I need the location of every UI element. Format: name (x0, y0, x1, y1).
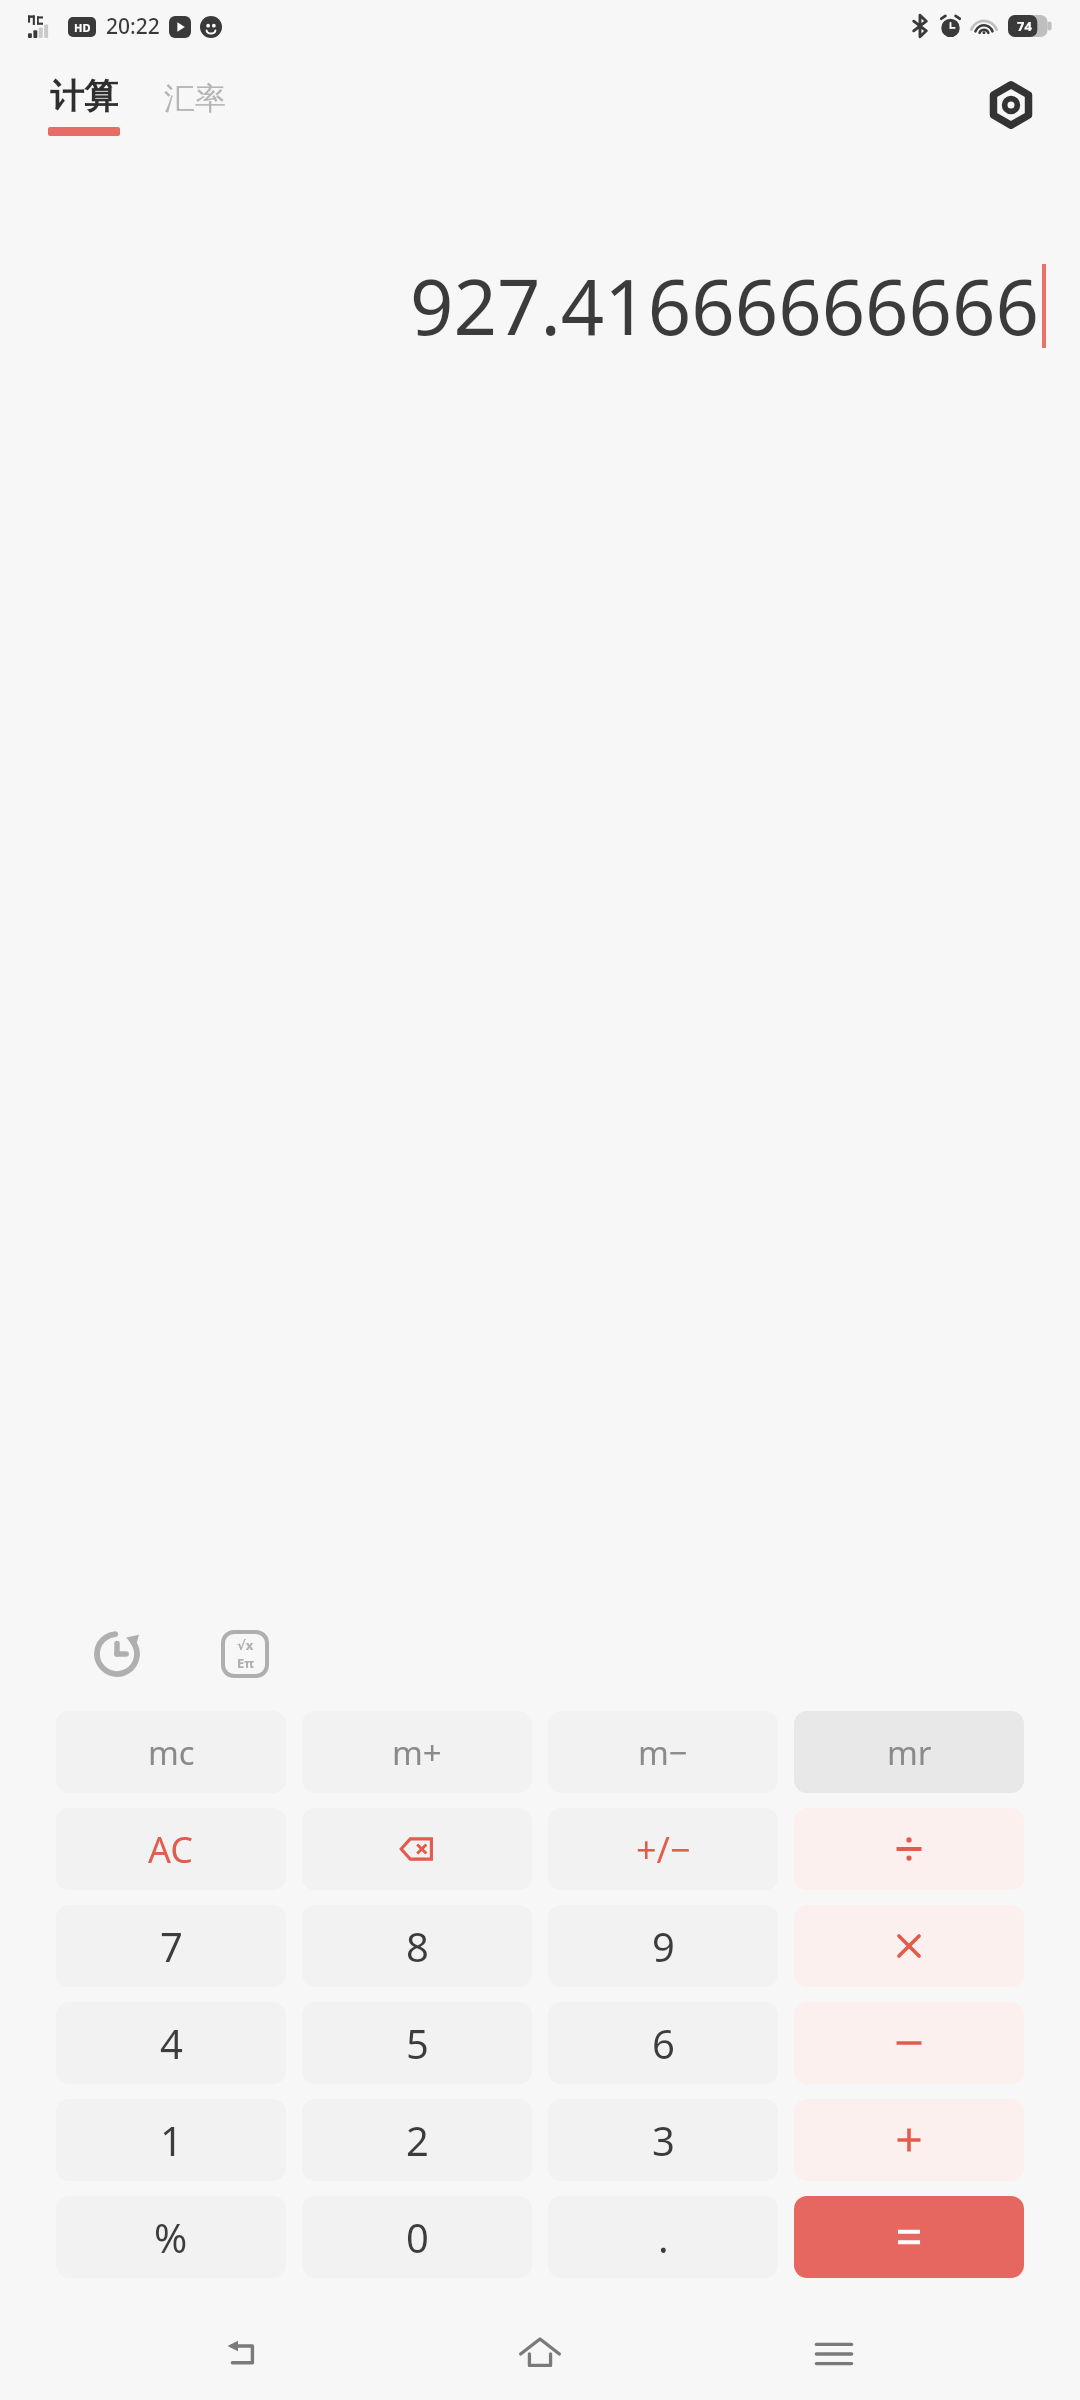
button[interactable]: Home (492, 2308, 588, 2400)
button[interactable]: . (548, 2196, 778, 2278)
staticText: 3 (652, 2113, 675, 2167)
button[interactable]: Divide (794, 1808, 1024, 1890)
staticText: mc (148, 1730, 195, 1775)
button[interactable]: 计算 (44, 75, 124, 136)
button[interactable]: Minus (794, 2002, 1024, 2084)
staticText: 9 (652, 1919, 675, 1973)
staticText: √x (237, 1636, 254, 1654)
staticText: . (658, 2210, 669, 2264)
staticText: HD (74, 20, 91, 35)
button[interactable]: 8 (302, 1905, 532, 1987)
button[interactable]: 5 (302, 2002, 532, 2084)
button[interactable]: 汇率 (160, 82, 230, 129)
staticText: 927.41666666666 (410, 254, 1039, 358)
staticText: 计算 (50, 75, 118, 118)
button[interactable]: 6 (548, 2002, 778, 2084)
button[interactable]: Multiply (794, 1905, 1024, 1987)
staticText: 7 (160, 1919, 183, 1973)
staticText: m− (638, 1730, 688, 1775)
staticText: 74 (1017, 17, 1032, 35)
button[interactable]: 1 (56, 2099, 286, 2181)
button[interactable]: Backspace (302, 1808, 532, 1890)
staticText: 汇率 (164, 79, 226, 118)
button[interactable]: +/− (548, 1808, 778, 1890)
button[interactable]: Settings (984, 78, 1038, 132)
staticText: Eπ (237, 1654, 254, 1672)
button[interactable]: m− (548, 1711, 778, 1793)
staticText: 6 (652, 2016, 675, 2070)
staticText: +/− (636, 1825, 691, 1874)
staticText: mr (887, 1730, 932, 1775)
button[interactable]: mr (794, 1711, 1024, 1793)
button[interactable]: mc (56, 1711, 286, 1793)
staticText: 0 (406, 2210, 429, 2264)
staticText: 5 (406, 2016, 429, 2070)
button[interactable]: % (56, 2196, 286, 2278)
button[interactable]: History (84, 1621, 150, 1687)
button[interactable]: Back (198, 2308, 294, 2400)
staticText: 4 (160, 2016, 183, 2070)
button[interactable]: Recent apps (786, 2308, 882, 2400)
staticText: m+ (392, 1730, 442, 1775)
button[interactable]: 4 (56, 2002, 286, 2084)
button[interactable]: 7 (56, 1905, 286, 1987)
button[interactable]: 3 (548, 2099, 778, 2181)
button[interactable]: Equals (794, 2196, 1024, 2278)
button[interactable]: AC (56, 1808, 286, 1890)
button[interactable]: 0 (302, 2196, 532, 2278)
staticText: 1 (160, 2113, 183, 2167)
button[interactable]: Scientific mode (212, 1621, 278, 1687)
staticText: AC (148, 1825, 194, 1874)
button[interactable]: Plus (794, 2099, 1024, 2181)
button[interactable]: m+ (302, 1711, 532, 1793)
staticText: % (154, 2210, 188, 2264)
staticText: 20:22 (106, 12, 160, 41)
button[interactable]: 9 (548, 1905, 778, 1987)
staticText: 8 (406, 1919, 429, 1973)
staticText: 2 (406, 2113, 429, 2167)
button[interactable]: 2 (302, 2099, 532, 2181)
